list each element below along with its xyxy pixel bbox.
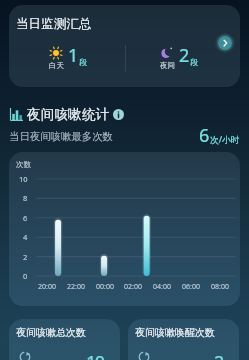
staticText: 2: [23, 252, 28, 262]
staticText: 10: [86, 350, 104, 360]
staticText: 02:00: [124, 282, 142, 292]
staticText: 4: [23, 232, 28, 242]
staticText: 当日监测汇总: [16, 16, 92, 32]
staticText: 夜间咳嗽唤醒次数: [135, 326, 215, 339]
staticText: 当日夜间咳嗽最多次数: [9, 130, 113, 143]
staticText: 0: [23, 271, 28, 281]
staticText: 1: [68, 43, 79, 68]
button[interactable]: 当日监测汇总: [9, 5, 240, 87]
staticText: 6: [199, 123, 210, 148]
staticText: 2: [179, 43, 190, 68]
staticText: 8: [23, 193, 28, 203]
staticText: 2: [214, 350, 223, 360]
staticText: 6: [23, 213, 28, 223]
staticText: 夜间咳嗽统计: [27, 106, 110, 123]
staticText: 00:00: [96, 282, 114, 292]
button[interactable]: 说明: [113, 109, 124, 120]
staticText: 20:00: [38, 282, 56, 292]
staticText: 04:00: [153, 282, 171, 292]
staticText: 10: [19, 174, 28, 184]
button[interactable]: 夜间咳嗽总次数: [9, 319, 120, 360]
staticText: 08:00: [211, 282, 229, 292]
button[interactable]: 夜间咳嗽唤醒次数: [128, 319, 239, 360]
staticText: 夜间: [160, 61, 175, 70]
staticText: 06:00: [182, 282, 200, 292]
staticText: 次/小时: [210, 134, 240, 146]
staticText: 段: [79, 57, 87, 67]
staticText: 22:00: [67, 282, 85, 292]
staticText: 次数: [16, 160, 31, 169]
staticText: 夜间咳嗽总次数: [16, 326, 86, 339]
button[interactable]: 查看详情: [215, 33, 235, 53]
staticText: 段: [190, 57, 198, 67]
staticText: 白天: [49, 61, 64, 70]
